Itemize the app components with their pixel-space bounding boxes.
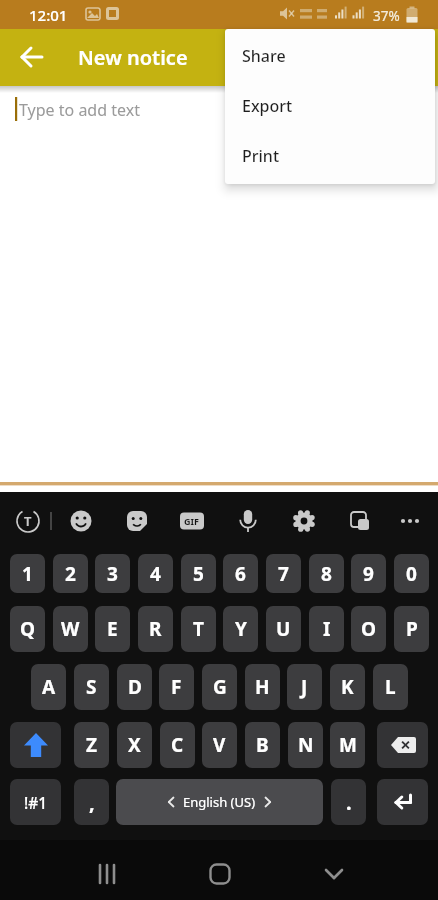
button[interactable]: . <box>331 779 366 825</box>
button[interactable]: I <box>309 606 344 652</box>
staticText: 8 <box>321 561 332 587</box>
staticText: F <box>171 674 182 700</box>
staticText: 12:01 <box>29 5 68 25</box>
button[interactable]: R <box>138 606 173 652</box>
staticText: 0 <box>406 561 417 587</box>
staticText: U <box>276 616 291 642</box>
button[interactable]: 4 <box>138 554 173 593</box>
staticText: 1 <box>22 561 33 587</box>
button[interactable]: F <box>159 664 194 710</box>
staticText: O <box>361 616 377 642</box>
staticText: K <box>341 674 354 700</box>
button[interactable]: Share <box>225 31 435 81</box>
button[interactable]: L <box>373 664 408 710</box>
button[interactable]: 8 <box>309 554 344 593</box>
button[interactable] <box>284 501 324 541</box>
button[interactable]: 6 <box>223 554 258 593</box>
button[interactable]: 3 <box>95 554 130 593</box>
staticText: L <box>385 674 396 700</box>
button[interactable]: M <box>330 722 365 768</box>
staticText: A <box>42 674 56 700</box>
button[interactable]: X <box>117 722 152 768</box>
button[interactable]: Y <box>223 606 258 652</box>
staticText: Export <box>242 95 293 117</box>
button[interactable]: 7 <box>266 554 301 593</box>
button[interactable] <box>228 501 268 541</box>
button[interactable]: H <box>245 664 280 710</box>
button[interactable]: A <box>31 664 66 710</box>
button[interactable]: 9 <box>351 554 386 593</box>
staticText: E <box>107 616 118 642</box>
staticText: X <box>128 732 141 758</box>
button[interactable]: English (US) <box>116 779 323 825</box>
staticText: W <box>61 616 80 642</box>
staticText: C <box>171 732 184 758</box>
button[interactable]: S <box>74 664 109 710</box>
staticText: Z <box>86 732 98 758</box>
button[interactable] <box>377 722 428 768</box>
staticText: 3 <box>107 561 118 587</box>
button[interactable]: Z <box>74 722 109 768</box>
button[interactable]: W <box>53 606 88 652</box>
button[interactable] <box>8 501 48 541</box>
button[interactable] <box>87 850 127 890</box>
staticText: J <box>301 674 308 700</box>
button[interactable] <box>377 779 428 825</box>
button[interactable]: T <box>181 606 216 652</box>
button[interactable]: 5 <box>181 554 216 593</box>
button[interactable]: C <box>160 722 195 768</box>
button[interactable] <box>314 850 354 890</box>
staticText: M <box>339 732 357 758</box>
button[interactable]: J <box>287 664 322 710</box>
button[interactable]: U <box>266 606 301 652</box>
button[interactable] <box>61 501 101 541</box>
button[interactable] <box>12 37 52 77</box>
staticText: 4 <box>150 561 161 587</box>
button[interactable]: V <box>202 722 237 768</box>
button[interactable]: Q <box>10 606 45 652</box>
button[interactable]: 2 <box>53 554 88 593</box>
button[interactable]: N <box>288 722 323 768</box>
staticText: D <box>128 674 142 700</box>
button[interactable] <box>200 850 240 890</box>
button[interactable]: !#1 <box>10 779 61 825</box>
button[interactable]: Type to add text <box>0 93 438 492</box>
staticText: B <box>256 732 269 758</box>
staticText: Share <box>242 45 286 67</box>
button[interactable]: D <box>117 664 152 710</box>
button[interactable]: 0 <box>394 554 429 593</box>
staticText: !#1 <box>24 792 48 813</box>
button[interactable]: Print <box>225 131 435 181</box>
staticText: T <box>24 512 32 530</box>
staticText: P <box>406 616 418 642</box>
button[interactable] <box>10 722 61 768</box>
staticText: R <box>149 616 162 642</box>
button[interactable] <box>390 501 430 541</box>
button[interactable]: E <box>95 606 130 652</box>
staticText: N <box>298 732 314 758</box>
staticText: 7 <box>278 561 289 587</box>
button[interactable]: , <box>74 779 109 825</box>
staticText: G <box>213 674 227 700</box>
button[interactable]: O <box>351 606 386 652</box>
button[interactable]: Export <box>225 81 435 131</box>
button[interactable]: B <box>245 722 280 768</box>
staticText: T <box>193 616 204 642</box>
button[interactable] <box>172 501 212 541</box>
button[interactable]: 1 <box>10 554 45 593</box>
staticText: GIF <box>184 515 199 527</box>
staticText: Type to add text <box>19 99 140 121</box>
button[interactable] <box>340 501 380 541</box>
button[interactable]: G <box>202 664 237 710</box>
staticText: 9 <box>363 561 374 587</box>
button[interactable]: P <box>394 606 429 652</box>
button[interactable]: K <box>330 664 365 710</box>
staticText: V <box>213 732 226 758</box>
button[interactable] <box>117 501 157 541</box>
staticText: 2 <box>65 561 76 587</box>
staticText: , <box>89 789 95 816</box>
staticText: 5 <box>193 561 204 587</box>
staticText: 37% <box>373 7 400 25</box>
staticText: Print <box>242 145 280 167</box>
staticText: New notice <box>78 44 188 71</box>
